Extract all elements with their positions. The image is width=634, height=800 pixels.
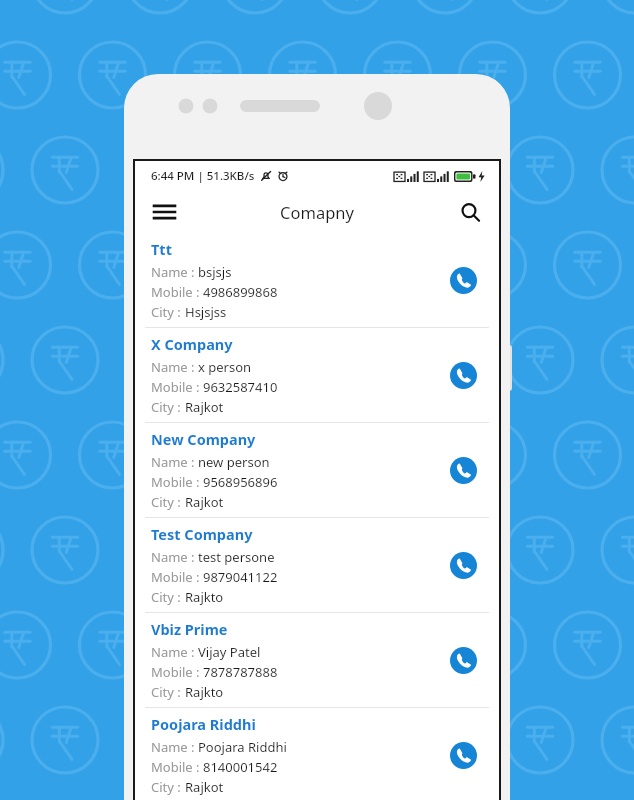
staticText: Hsjsjss — [185, 303, 227, 321]
staticText: City : — [151, 588, 185, 606]
staticText: Vijay Patel — [198, 643, 261, 661]
staticText: Name : — [151, 358, 198, 376]
staticText: 4986899868 — [203, 283, 278, 301]
staticText: Vbiz Prime — [151, 619, 228, 639]
button[interactable]: Open navigation menu — [143, 191, 185, 233]
staticText: new person — [198, 453, 270, 471]
staticText: x person — [198, 358, 252, 376]
button[interactable]: Test Company — [135, 518, 499, 612]
staticText: Rajkto — [185, 683, 224, 701]
staticText: 6:44 PM | 51.3KB/s — [151, 168, 255, 184]
staticText: test persone — [198, 548, 275, 566]
button[interactable]: Call new person — [441, 448, 485, 492]
staticText: Comapny — [280, 201, 354, 223]
button[interactable]: X Company — [135, 328, 499, 422]
button[interactable]: Call x person — [441, 353, 485, 397]
button[interactable]: Ttt — [135, 233, 499, 327]
staticText: Rajkot — [185, 778, 224, 796]
button[interactable]: Call bsjsjs — [441, 258, 485, 302]
staticText: Mobile : — [151, 473, 203, 491]
button[interactable]: Call Poojara Riddhi — [441, 733, 485, 777]
staticText: Poojara Riddhi — [151, 714, 256, 734]
staticText: 8140001542 — [203, 758, 278, 776]
staticText: City : — [151, 398, 185, 416]
staticText: Name : — [151, 263, 198, 281]
button[interactable]: Call Vijay Patel — [441, 638, 485, 682]
staticText: Ttt — [151, 239, 172, 259]
staticText: 9568956896 — [203, 473, 278, 491]
staticText: bsjsjs — [198, 263, 232, 281]
staticText: Rajkto — [185, 588, 224, 606]
staticText: Mobile : — [151, 283, 203, 301]
staticText: Name : — [151, 643, 198, 661]
staticText: X Company — [151, 334, 233, 354]
staticText: City : — [151, 778, 185, 796]
button[interactable]: Search — [449, 191, 491, 233]
staticText: City : — [151, 303, 185, 321]
staticText: Mobile : — [151, 568, 203, 586]
staticText: Rajkot — [185, 493, 224, 511]
staticText: Name : — [151, 453, 198, 471]
staticText: Mobile : — [151, 663, 203, 681]
staticText: Poojara Riddhi — [198, 738, 287, 756]
staticText: 7878787888 — [203, 663, 278, 681]
staticText: Name : — [151, 548, 198, 566]
staticText: City : — [151, 683, 185, 701]
staticText: 9879041122 — [203, 568, 278, 586]
staticText: Rajkot — [185, 398, 224, 416]
staticText: Name : — [151, 738, 198, 756]
button[interactable]: Poojara Riddhi — [135, 708, 499, 800]
staticText: New Company — [151, 429, 256, 449]
button[interactable]: Vbiz Prime — [135, 613, 499, 707]
button[interactable]: Call test persone — [441, 543, 485, 587]
staticText: 9632587410 — [203, 378, 278, 396]
staticText: Mobile : — [151, 758, 203, 776]
staticText: Test Company — [151, 524, 253, 544]
button[interactable]: New Company — [135, 423, 499, 517]
staticText: Mobile : — [151, 378, 203, 396]
staticText: City : — [151, 493, 185, 511]
